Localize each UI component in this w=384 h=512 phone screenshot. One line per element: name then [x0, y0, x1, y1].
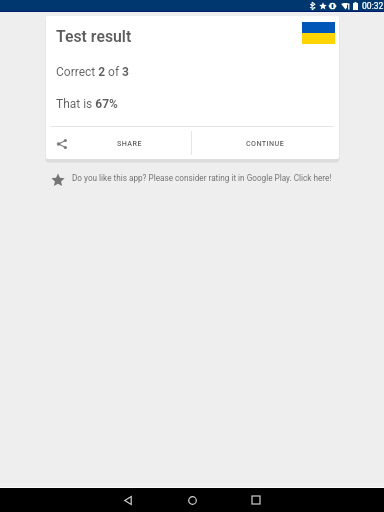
staticText: Do you like this app? Please consider ra… — [72, 173, 332, 183]
button[interactable]: Back — [96, 488, 160, 512]
staticText: CONTINUE — [246, 139, 285, 147]
staticText: Correct 2 of 3 — [56, 65, 129, 79]
staticText: SHARE — [117, 139, 142, 147]
button[interactable]: CONTINUE — [192, 127, 338, 159]
button[interactable]: Recent apps — [224, 488, 288, 512]
staticText: That is 67% — [56, 97, 118, 111]
other: Ukrainian flag — [302, 22, 335, 44]
button[interactable]: Home — [160, 488, 224, 512]
button[interactable]: Do you like this app? Please consider ra… — [46, 168, 346, 192]
staticText: Test result — [56, 27, 132, 46]
staticText: 00:32 — [362, 1, 384, 11]
button[interactable]: SHARE — [46, 127, 191, 159]
